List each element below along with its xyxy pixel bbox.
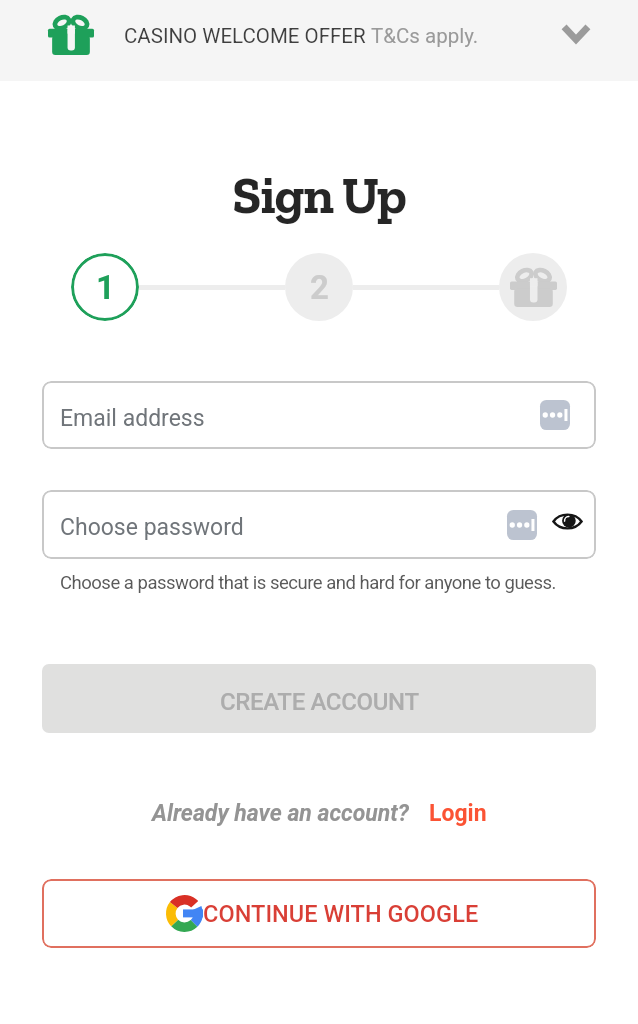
button[interactable]: Expand offer xyxy=(552,10,600,58)
staticText: Email address xyxy=(60,405,205,432)
button[interactable]: CONTINUE WITH GOOGLE xyxy=(42,879,596,948)
staticText: CONTINUE WITH GOOGLE xyxy=(203,900,479,928)
staticText: Choose password xyxy=(60,514,244,541)
staticText: Choose a password that is secure and har… xyxy=(60,572,556,594)
staticText: 1 xyxy=(96,268,115,307)
button[interactable]: Choose password xyxy=(42,490,596,559)
button[interactable]: Login xyxy=(429,800,487,827)
staticText: 2 xyxy=(310,268,329,307)
staticText: CASINO WELCOME OFFER xyxy=(124,24,371,48)
staticText: CREATE ACCOUNT xyxy=(220,688,419,716)
staticText: Sign Up xyxy=(0,164,638,226)
button[interactable]: CASINO WELCOME OFFER xyxy=(0,0,638,81)
button[interactable]: Show password xyxy=(546,502,588,540)
button[interactable]: Email address xyxy=(42,381,596,449)
staticText: T&Cs apply. xyxy=(371,24,479,48)
staticText: Login xyxy=(429,800,487,827)
staticText: Already have an account? xyxy=(152,800,409,827)
button[interactable]: CREATE ACCOUNT xyxy=(42,664,596,733)
